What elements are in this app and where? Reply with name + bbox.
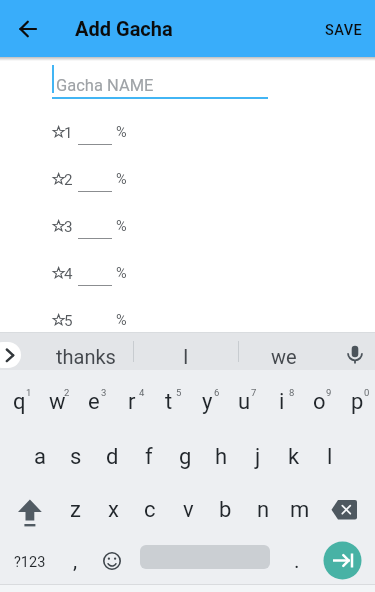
staticText: z xyxy=(70,497,81,523)
staticText: l xyxy=(327,444,333,470)
button[interactable]: v xyxy=(169,483,207,537)
button[interactable]: d xyxy=(93,430,131,484)
staticText: % xyxy=(116,171,127,188)
button[interactable]: s xyxy=(57,430,95,484)
staticText: h xyxy=(215,444,228,470)
button[interactable]: we xyxy=(244,336,324,376)
button[interactable]: n xyxy=(244,483,282,537)
staticText: 2 xyxy=(64,171,73,189)
staticText: x xyxy=(108,497,119,523)
button[interactable]: . xyxy=(285,541,309,581)
button[interactable]: a xyxy=(21,430,59,484)
staticText: k xyxy=(288,444,300,470)
staticText: q xyxy=(13,389,26,415)
staticText: m xyxy=(290,497,310,523)
button[interactable]: p xyxy=(338,375,375,429)
staticText: 7 xyxy=(251,387,257,398)
button[interactable]: b xyxy=(206,483,244,537)
button[interactable]: i xyxy=(263,375,301,429)
staticText: SAVE xyxy=(325,22,363,39)
staticText: u xyxy=(238,389,251,415)
staticText: f xyxy=(145,444,153,470)
staticText: % xyxy=(116,312,127,329)
button[interactable]: u xyxy=(225,375,263,429)
button[interactable] xyxy=(343,340,367,364)
button[interactable] xyxy=(52,62,268,98)
button[interactable]: w xyxy=(38,375,76,429)
staticText: ?123 xyxy=(14,554,46,571)
button[interactable]: q xyxy=(0,375,38,429)
button[interactable] xyxy=(78,134,112,145)
button[interactable]: thanks xyxy=(36,336,136,376)
staticText: 1 xyxy=(26,387,32,398)
staticText: 6 xyxy=(214,387,220,398)
staticText: o xyxy=(313,389,326,415)
button[interactable] xyxy=(0,333,40,370)
staticText: 0 xyxy=(364,387,370,398)
button[interactable] xyxy=(323,541,362,580)
button[interactable]: j xyxy=(239,430,277,484)
staticText: y xyxy=(202,389,213,415)
button[interactable] xyxy=(78,228,112,239)
staticText: % xyxy=(116,218,127,235)
staticText: a xyxy=(34,444,46,470)
staticText: w xyxy=(49,389,66,415)
staticText: d xyxy=(106,444,119,470)
button[interactable]: ?123 xyxy=(5,539,55,585)
button[interactable]: h xyxy=(202,430,240,484)
staticText: thanks xyxy=(56,345,116,368)
staticText: we xyxy=(271,345,297,368)
staticText: j xyxy=(255,444,261,470)
button[interactable] xyxy=(78,275,112,286)
button[interactable]: , xyxy=(63,541,87,581)
staticText: e xyxy=(88,389,100,415)
button[interactable]: k xyxy=(275,430,313,484)
staticText: 9 xyxy=(326,387,332,398)
button[interactable] xyxy=(326,495,366,525)
staticText: i xyxy=(279,389,285,415)
button[interactable]: e xyxy=(75,375,113,429)
staticText: s xyxy=(70,444,82,470)
staticText: Add Gacha xyxy=(75,17,173,40)
button[interactable]: m xyxy=(281,483,319,537)
button[interactable]: t xyxy=(150,375,188,429)
staticText: 8 xyxy=(289,387,295,398)
staticText: 4 xyxy=(64,265,73,283)
staticText: . xyxy=(294,549,300,574)
staticText: 5 xyxy=(176,387,182,398)
staticText: 3 xyxy=(101,387,107,398)
button[interactable]: x xyxy=(94,483,132,537)
staticText: c xyxy=(144,497,156,523)
button[interactable] xyxy=(16,17,40,41)
staticText: % xyxy=(116,265,127,282)
staticText: g xyxy=(179,444,192,470)
button[interactable] xyxy=(140,545,270,569)
staticText: r xyxy=(128,389,136,415)
staticText: p xyxy=(351,389,364,415)
staticText: b xyxy=(219,497,232,523)
staticText: 2 xyxy=(64,387,70,398)
button[interactable]: y xyxy=(188,375,226,429)
staticText: Gacha NAME xyxy=(56,76,154,95)
button[interactable]: l xyxy=(311,430,349,484)
button[interactable]: f xyxy=(130,430,168,484)
staticText: % xyxy=(116,124,127,141)
staticText: v xyxy=(183,497,194,523)
button[interactable]: SAVE xyxy=(316,11,371,49)
staticText: 3 xyxy=(64,218,73,236)
button[interactable]: c xyxy=(131,483,169,537)
button[interactable]: o xyxy=(300,375,338,429)
button[interactable] xyxy=(78,181,112,192)
staticText: 5 xyxy=(64,312,73,330)
button[interactable]: I xyxy=(156,336,216,376)
button[interactable]: g xyxy=(166,430,204,484)
button[interactable] xyxy=(100,549,124,573)
button[interactable] xyxy=(78,322,112,333)
staticText: 1 xyxy=(64,124,73,142)
button[interactable] xyxy=(10,490,50,530)
button[interactable]: r xyxy=(113,375,151,429)
staticText: t xyxy=(165,389,173,415)
staticText: 4 xyxy=(139,387,145,398)
button[interactable]: z xyxy=(56,483,94,537)
staticText: I xyxy=(183,345,189,368)
